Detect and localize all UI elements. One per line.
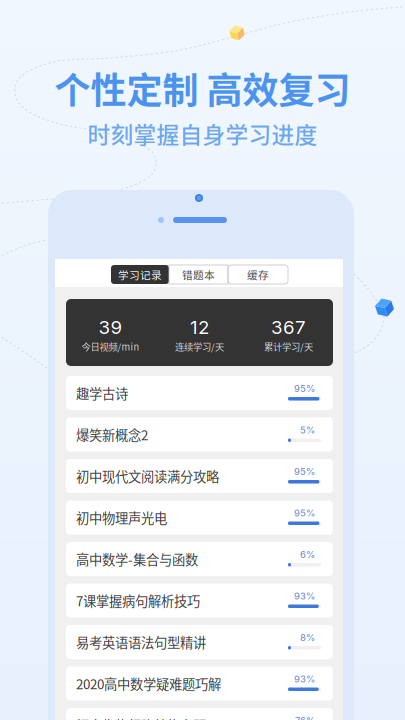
staticText: 367 [271,316,306,339]
staticText: 7课掌握病句解析技巧 [76,591,200,610]
button[interactable]: 2020高中数学疑难题巧解 [66,666,333,700]
staticText: 8% [300,632,315,643]
staticText: 今日视频/min [81,340,139,353]
button[interactable]: 学习记录 [111,265,169,284]
button[interactable]: 7课掌握病句解析技巧 [66,583,333,617]
button[interactable]: 初中现代文阅读满分攻略 [66,459,333,493]
staticText: 累计学习/天 [264,340,313,353]
staticText: 6% [300,549,315,560]
staticText: 缓存 [247,267,269,282]
staticText: 76% [295,715,315,720]
staticText: 连续学习/天 [175,340,224,353]
staticText: 初中物理声光电 [76,508,167,527]
staticText: 趣学古诗 [76,383,128,403]
staticText: 初中生物细胞结构专题 [76,715,206,720]
staticText: 爆笑新概念2 [76,425,148,444]
button[interactable]: 缓存 [228,265,288,284]
button[interactable]: 高中数学-集合与函数 [66,542,333,576]
button[interactable]: 趣学古诗 [66,376,333,410]
button[interactable]: 爆笑新概念2 [66,417,333,451]
button[interactable]: 初中生物细胞结构专题 [66,708,333,720]
staticText: 学习记录 [118,267,162,282]
staticText: 95% [294,383,315,394]
button[interactable]: 错题本 [169,265,228,284]
button[interactable]: 初中物理声光电 [66,500,333,534]
staticText: 5% [300,424,315,436]
staticText: 个性定制 高效复习 [54,62,350,114]
staticText: 时刻掌握自身学习进度 [87,117,317,150]
staticText: 高中数学-集合与函数 [76,549,198,569]
staticText: 93% [294,590,315,602]
staticText: 95% [294,466,315,477]
staticText: 12 [190,316,209,339]
button[interactable]: 易考英语语法句型精讲 [66,625,333,659]
staticText: 错题本 [182,267,215,282]
staticText: 95% [294,507,315,519]
staticText: 93% [294,673,315,685]
staticText: 初中现代文阅读满分攻略 [76,466,219,486]
staticText: 39 [98,316,122,339]
staticText: 易考英语语法句型精讲 [76,632,206,652]
staticText: 2020高中数学疑难题巧解 [76,674,221,693]
